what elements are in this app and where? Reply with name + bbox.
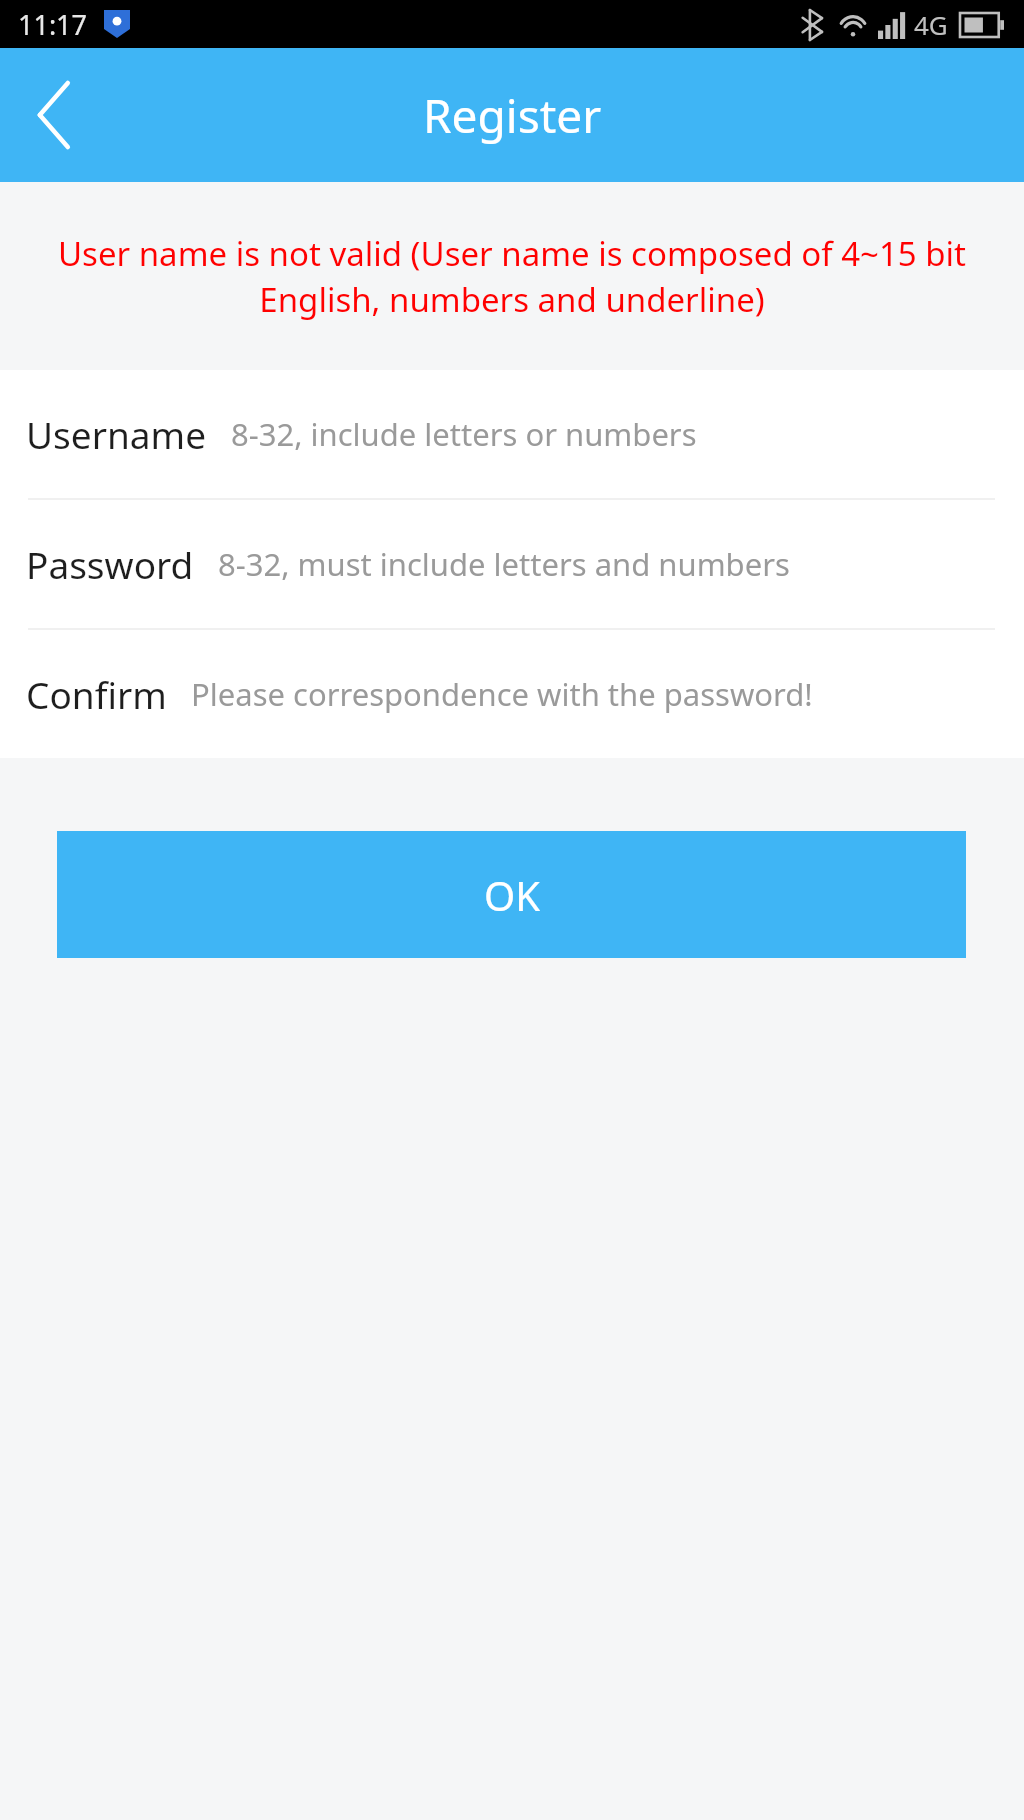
staticText: Please correspondence with the password! — [191, 673, 813, 715]
staticText: 4G — [914, 7, 948, 42]
button[interactable]: Password — [0, 500, 1024, 628]
staticText: User name is not valid (User name is com… — [52, 231, 972, 322]
staticText: 11:17 — [18, 6, 88, 43]
staticText: Username — [26, 409, 207, 459]
button[interactable]: Username — [0, 370, 1024, 498]
staticText: Confirm — [26, 669, 167, 719]
button[interactable]: Confirm — [0, 630, 1024, 758]
staticText: Password — [26, 539, 194, 589]
button[interactable]: Back — [0, 60, 110, 170]
staticText: 8-32, must include letters and numbers — [218, 543, 790, 585]
staticText: OK — [484, 868, 540, 922]
staticText: Register — [423, 84, 602, 147]
staticText: 8-32, include letters or numbers — [231, 413, 697, 455]
button[interactable]: OK — [57, 831, 966, 958]
